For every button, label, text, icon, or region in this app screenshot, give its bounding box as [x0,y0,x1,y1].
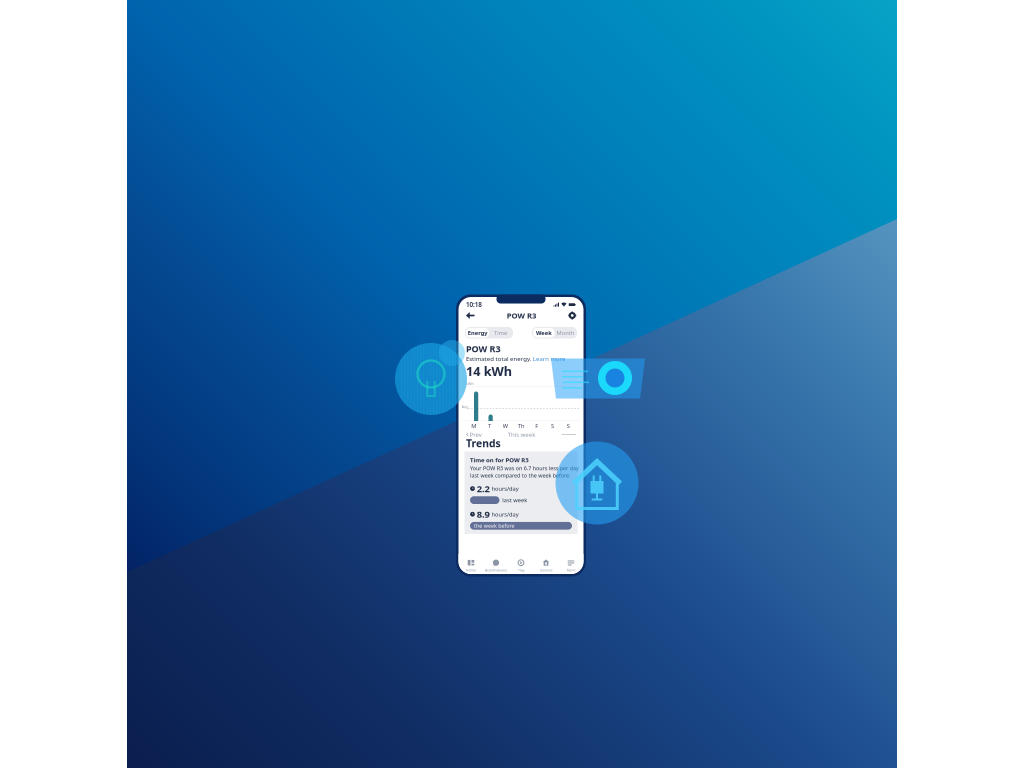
staticText: last week compared to the week before. [317,581,719,609]
staticText: F [578,381,590,411]
staticText: Time on for POW R3 [317,517,552,549]
staticText: hours/day [403,633,512,663]
staticText: This week [468,415,579,447]
staticText: T [389,381,402,411]
staticText: POW R3 [301,64,440,112]
staticText: last week [446,679,546,709]
staticText: 14 kWh [301,144,485,211]
staticText: hours/day [403,735,512,765]
staticText: Trends [301,439,440,493]
staticText: Th [507,381,534,411]
staticText: Estimated total energy. [301,112,562,144]
staticText: W [448,381,469,411]
staticText: Learn more [568,112,699,144]
staticText: S [641,381,653,411]
staticText: Your POW R3 was on 6.7 hours less per da… [317,552,752,581]
